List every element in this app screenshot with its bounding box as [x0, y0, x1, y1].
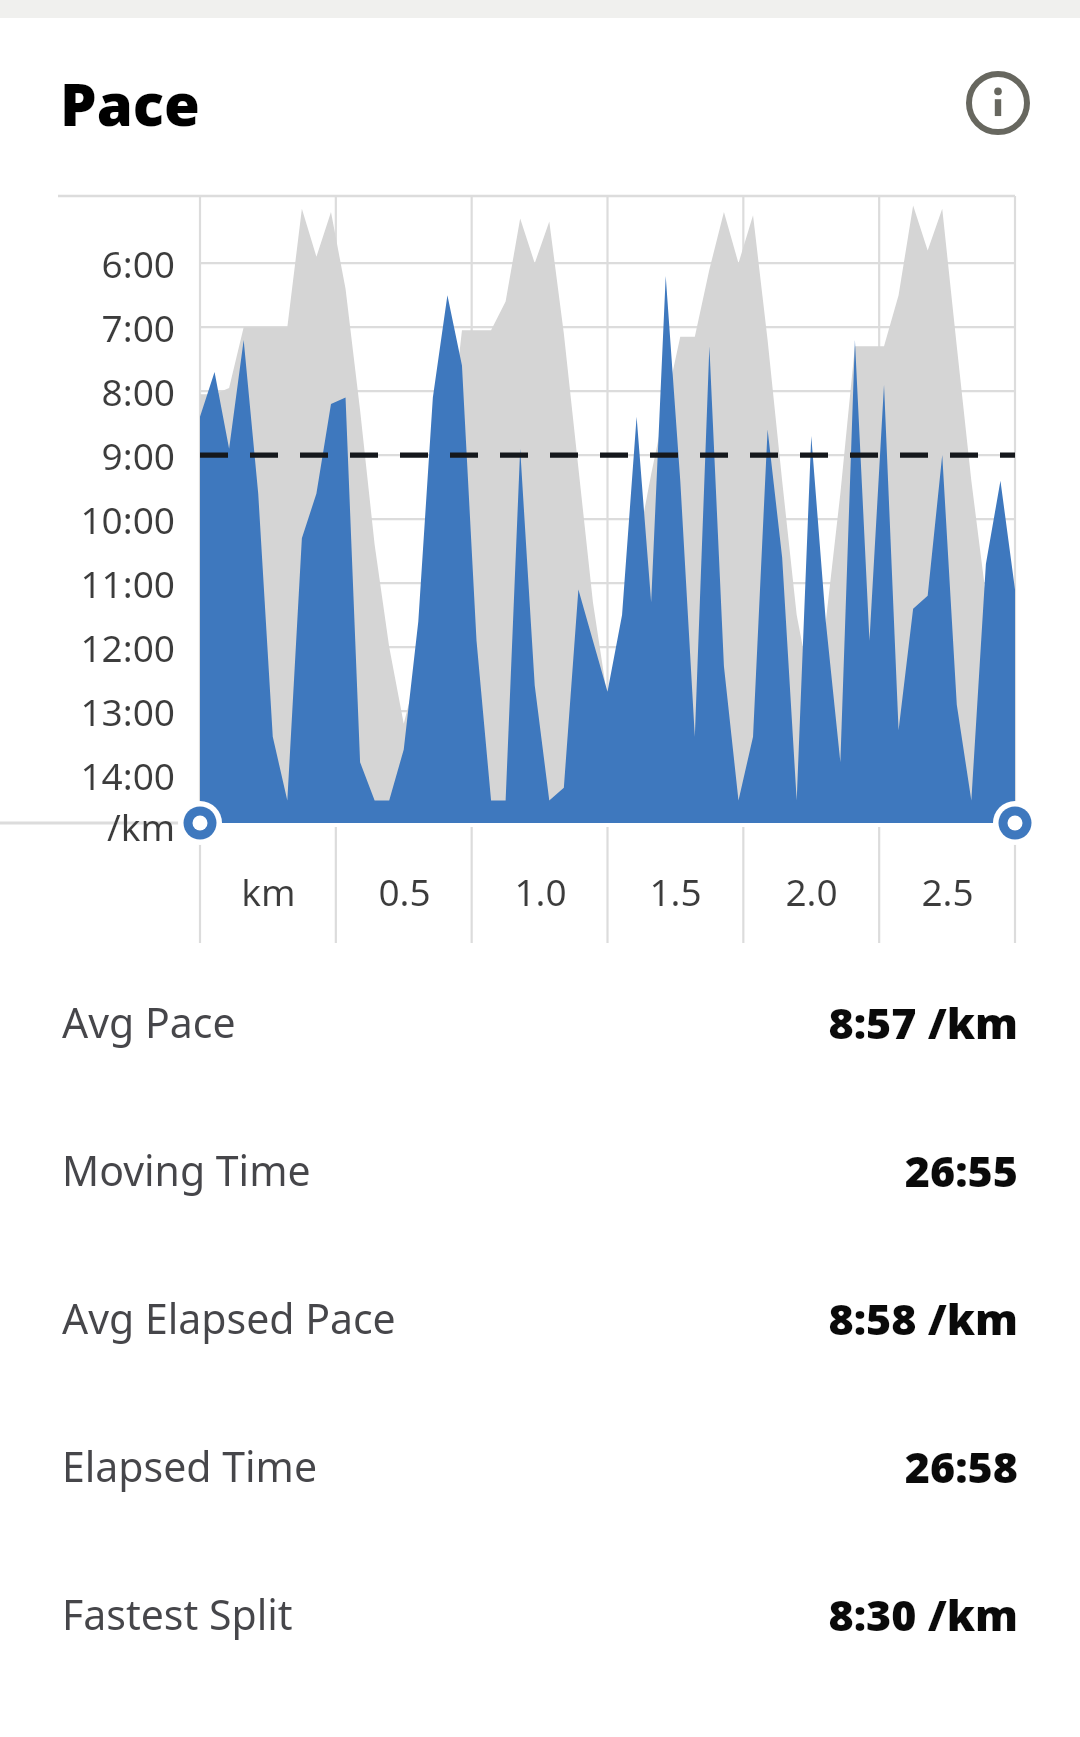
- staticText: 26:55: [904, 1141, 1018, 1200]
- staticText: 8:30 /km: [828, 1585, 1018, 1644]
- staticText: 1.5: [649, 866, 702, 916]
- button[interactable]: Info: [960, 65, 1036, 141]
- staticText: 7:00: [101, 302, 175, 352]
- staticText: 2.5: [921, 866, 974, 916]
- staticText: 0.5: [378, 866, 431, 916]
- staticText: Pace: [60, 64, 200, 143]
- staticText: 26:58: [904, 1437, 1018, 1496]
- staticText: 10:00: [80, 494, 175, 544]
- button[interactable]: Avg Elapsed Pace: [0, 1244, 1080, 1392]
- staticText: /km: [106, 801, 175, 851]
- staticText: 8:57 /km: [828, 993, 1018, 1052]
- staticText: Elapsed Time: [62, 1438, 318, 1494]
- staticText: 14:00: [80, 750, 175, 800]
- staticText: 6:00: [101, 238, 175, 288]
- staticText: 8:58 /km: [828, 1289, 1018, 1348]
- button[interactable]: Fastest Split: [0, 1540, 1080, 1688]
- staticText: 12:00: [80, 622, 175, 672]
- staticText: km: [241, 866, 296, 916]
- button[interactable]: Avg Pace: [0, 948, 1080, 1096]
- staticText: 11:00: [80, 558, 175, 608]
- staticText: 2.0: [785, 866, 838, 916]
- button[interactable]: Moving Time: [0, 1096, 1080, 1244]
- staticText: 9:00: [101, 430, 175, 480]
- staticText: Moving Time: [62, 1142, 311, 1198]
- staticText: Avg Elapsed Pace: [62, 1290, 396, 1346]
- button[interactable]: Elapsed Time: [0, 1392, 1080, 1540]
- staticText: Fastest Split: [62, 1586, 293, 1642]
- staticText: Avg Pace: [62, 994, 236, 1050]
- staticText: 13:00: [80, 686, 175, 736]
- staticText: 1.0: [514, 866, 567, 916]
- staticText: 8:00: [101, 366, 175, 416]
